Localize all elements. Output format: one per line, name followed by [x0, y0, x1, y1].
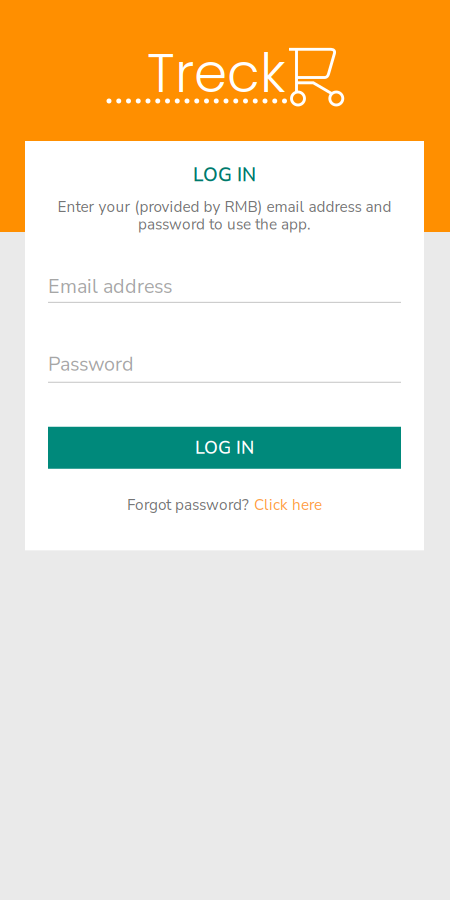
staticText: password to use the app. [138, 214, 311, 235]
staticText: Email address [48, 273, 172, 300]
staticText: Password [48, 351, 134, 378]
staticText: Click here [254, 495, 322, 515]
button[interactable]: LOG IN [48, 427, 401, 469]
staticText: LOG IN [195, 436, 254, 460]
staticText: Forgot password? [127, 495, 249, 515]
staticText: Treck [147, 36, 286, 111]
button[interactable]: Click here [254, 495, 322, 515]
staticText: LOG IN [193, 162, 256, 188]
staticText: Enter your (provided by RMB) email addre… [57, 197, 391, 217]
